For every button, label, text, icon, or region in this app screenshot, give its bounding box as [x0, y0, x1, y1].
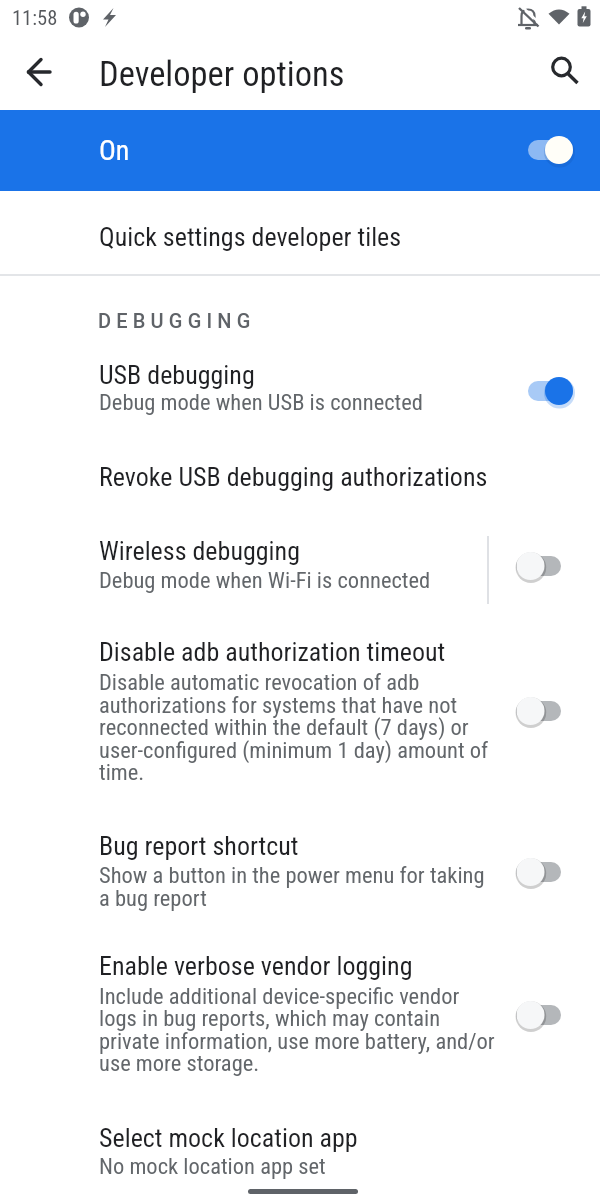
staticText: Include additional device-specific vendo…: [99, 983, 460, 1009]
staticText: Wireless debugging: [99, 536, 300, 566]
button[interactable]: [0, 1112, 600, 1200]
staticText: Show a button in the power menu for taki…: [99, 862, 485, 888]
button[interactable]: [0, 628, 600, 795]
staticText: Quick settings developer tiles: [99, 222, 402, 252]
staticText: Bug report shortcut: [99, 831, 299, 861]
button[interactable]: [0, 943, 600, 1088]
staticText: authorizations for systems that have not: [99, 692, 458, 718]
button[interactable]: [0, 110, 600, 191]
staticText: Select mock location app: [99, 1123, 358, 1153]
staticText: user-configured (minimum 1 day) amount o…: [99, 737, 489, 763]
staticText: logs in bug reports, which may contain: [99, 1005, 441, 1031]
staticText: 11:58: [12, 6, 58, 30]
staticText: time.: [99, 759, 145, 785]
staticText: a bug report: [99, 885, 207, 911]
staticText: reconnected within the default (7 days) …: [99, 714, 469, 740]
staticText: use more storage.: [99, 1050, 260, 1076]
button[interactable]: [538, 44, 590, 96]
staticText: Debug mode when Wi-Fi is connected: [99, 567, 431, 593]
button[interactable]: [0, 528, 600, 604]
staticText: DEBUGGING: [98, 309, 256, 332]
staticText: USB debugging: [99, 360, 255, 390]
staticText: Debug mode when USB is connected: [99, 389, 423, 415]
button[interactable]: [0, 192, 600, 274]
staticText: Developer options: [99, 54, 345, 94]
staticText: Disable automatic revocation of adb: [99, 669, 420, 695]
staticText: Revoke USB debugging authorizations: [99, 462, 488, 492]
staticText: On: [99, 134, 130, 167]
button[interactable]: [15, 48, 63, 96]
staticText: private information, use more battery, a…: [99, 1028, 495, 1054]
staticText: Enable verbose vendor logging: [99, 951, 413, 981]
staticText: No mock location app set: [99, 1153, 326, 1179]
button[interactable]: [0, 822, 600, 922]
staticText: Disable adb authorization timeout: [99, 637, 446, 667]
button[interactable]: [0, 442, 600, 514]
button[interactable]: [0, 345, 600, 433]
